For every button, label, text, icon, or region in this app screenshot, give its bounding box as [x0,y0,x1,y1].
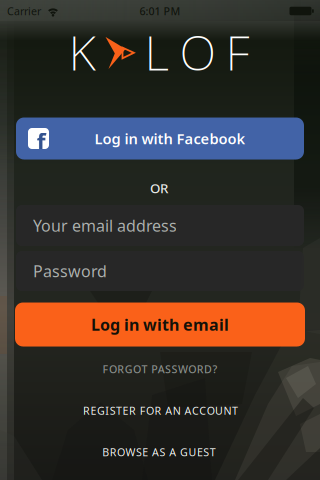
button[interactable]: Log in with email [15,302,305,346]
staticText: L [144,20,168,84]
staticText: f [37,127,46,157]
staticText: O [179,20,215,84]
staticText: Carrier [7,4,41,18]
button[interactable]: BROWSE AS A GUEST [102,445,216,459]
button[interactable]: Your email address [16,205,304,246]
staticText: Log in with email [91,314,229,335]
button[interactable]: FORGOT PASSWORD? [102,362,217,376]
staticText: FORGOT PASSWORD? [102,362,217,376]
staticText: 6:01 PM [139,4,180,18]
button[interactable]: Log in with Facebook [16,117,304,159]
button[interactable]: REGISTER FOR AN ACCOUNT [83,403,238,418]
staticText: Log in with Facebook [94,129,245,148]
staticText: Your email address [33,215,177,236]
staticText: K [68,20,95,84]
staticText: BROWSE AS A GUEST [102,445,216,459]
button[interactable]: Password [16,251,304,291]
staticText: F [225,20,249,84]
staticText: OR [150,179,168,197]
staticText: REGISTER FOR AN ACCOUNT [83,403,238,418]
staticText: Password [33,260,107,282]
